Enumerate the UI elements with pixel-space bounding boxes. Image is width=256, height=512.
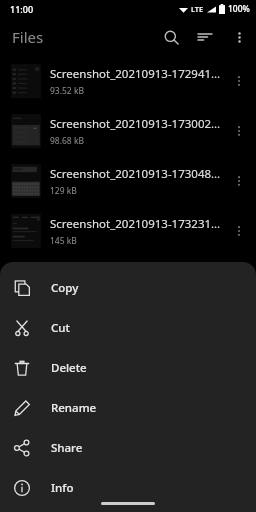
staticText: Rename — [51, 400, 97, 416]
button[interactable]: Rename — [0, 388, 256, 428]
button[interactable]: Search — [154, 20, 188, 54]
staticText: 11:00 — [10, 3, 34, 15]
staticText: 100% — [228, 3, 250, 15]
button[interactable]: Share — [0, 428, 256, 468]
staticText: Screenshot_20210913-172941… — [50, 66, 221, 82]
button[interactable]: Copy — [0, 268, 256, 308]
staticText: Cut — [51, 320, 70, 336]
button[interactable]: Item options — [225, 67, 253, 95]
staticText: Copy — [51, 280, 79, 296]
staticText: 98.68 kB — [50, 135, 85, 147]
button[interactable]: Item options — [225, 217, 253, 245]
button[interactable]: Screenshot_20210913-173002… — [0, 106, 256, 156]
button[interactable]: Sort — [188, 20, 222, 54]
button[interactable]: More options — [222, 20, 256, 54]
staticText: LTE — [191, 4, 204, 14]
staticText: Files — [12, 27, 44, 47]
button[interactable]: Item options — [225, 117, 253, 145]
staticText: 129 kB — [50, 185, 77, 197]
staticText: Screenshot_20210913-173048… — [50, 166, 221, 182]
button[interactable]: Screenshot_20210913-173048… — [0, 156, 256, 206]
button[interactable]: Screenshot_20210913-172941… — [0, 56, 256, 106]
staticText: Info — [51, 480, 74, 496]
staticText: Share — [51, 440, 83, 456]
button[interactable]: Delete — [0, 348, 256, 388]
staticText: Screenshot_20210913-173231… — [50, 216, 221, 232]
button[interactable]: Cut — [0, 308, 256, 348]
button[interactable]: Info — [0, 468, 256, 508]
button[interactable]: Item options — [225, 167, 253, 195]
button[interactable]: Screenshot_20210913-173231… — [0, 206, 256, 256]
staticText: 93.52 kB — [50, 85, 85, 97]
staticText: Screenshot_20210913-173002… — [50, 116, 221, 132]
staticText: Delete — [51, 360, 87, 376]
staticText: 145 kB — [50, 235, 77, 247]
